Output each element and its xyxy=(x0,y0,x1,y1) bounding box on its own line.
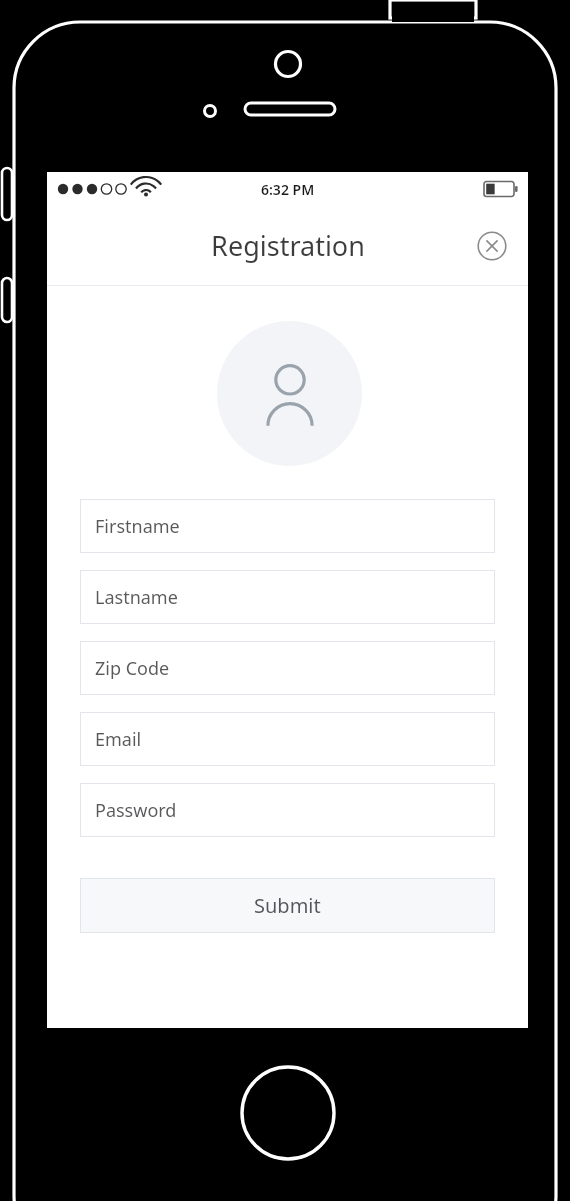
staticText: Submit xyxy=(254,892,321,919)
button[interactable]: Lastname xyxy=(80,570,495,624)
staticText: Zip Code xyxy=(95,656,170,681)
button[interactable]: Password xyxy=(80,783,495,837)
button[interactable]: Email xyxy=(80,712,495,766)
staticText: Registration xyxy=(211,227,365,264)
staticText: Email xyxy=(95,727,142,752)
staticText: Lastname xyxy=(95,585,178,610)
staticText: Password xyxy=(95,798,177,823)
button[interactable]: Close xyxy=(470,224,514,268)
button[interactable]: Profile photo xyxy=(217,321,362,466)
button[interactable]: Zip Code xyxy=(80,641,495,695)
button[interactable]: Submit xyxy=(80,878,495,933)
staticText: 6:32 PM xyxy=(261,180,315,199)
button[interactable]: Firstname xyxy=(80,499,495,553)
staticText: Firstname xyxy=(95,514,180,539)
